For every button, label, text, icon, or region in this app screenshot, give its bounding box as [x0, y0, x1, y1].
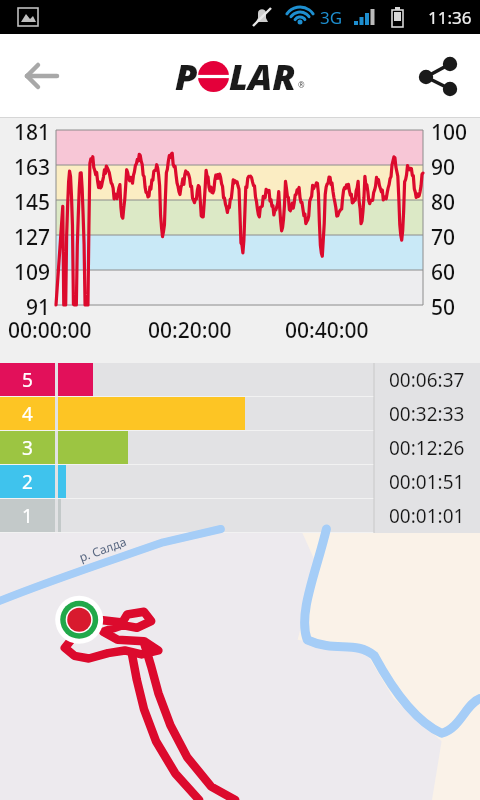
staticText: 3G — [320, 6, 343, 29]
button[interactable]: Back — [10, 44, 74, 108]
staticText: р. Салда — [77, 533, 128, 565]
staticText: P — [175, 52, 198, 101]
staticText: 2 — [0, 469, 55, 495]
staticText: 00:12:26 — [389, 435, 465, 461]
staticText: 70 — [431, 223, 479, 252]
staticText: 145 — [0, 188, 50, 217]
staticText: 00:06:37 — [389, 367, 465, 393]
button[interactable]: Share — [408, 45, 470, 107]
staticText: 60 — [431, 258, 479, 287]
staticText: 163 — [0, 153, 50, 182]
staticText: 00:01:51 — [389, 469, 465, 495]
staticText: 4 — [0, 401, 55, 427]
staticText: 5 — [0, 367, 55, 393]
staticText: 00:20:00 — [148, 316, 232, 345]
staticText: ® — [298, 79, 305, 90]
staticText: 11:36 — [428, 6, 472, 29]
button[interactable]: 5 — [0, 363, 480, 397]
button[interactable]: 1 — [0, 499, 480, 533]
button[interactable]: 2 — [0, 465, 480, 499]
button[interactable]: 4 — [0, 397, 480, 431]
staticText: 3 — [0, 435, 55, 461]
staticText: 50 — [431, 293, 479, 322]
button[interactable]: 3 — [0, 431, 480, 465]
staticText: 181 — [0, 118, 50, 147]
staticText: 1 — [0, 503, 55, 529]
staticText: 91 — [0, 293, 50, 322]
button[interactable]: р. Салда — [0, 533, 480, 800]
staticText: 109 — [0, 258, 50, 287]
staticText: 100 — [431, 118, 479, 147]
staticText: 00:32:33 — [389, 401, 465, 427]
staticText: 90 — [431, 153, 479, 182]
staticText: 00:01:01 — [389, 503, 465, 529]
staticText: LAR — [229, 52, 296, 101]
staticText: 127 — [0, 223, 50, 252]
staticText: 80 — [431, 188, 479, 217]
staticText: 00:40:00 — [285, 316, 369, 345]
staticText: 00:00:00 — [8, 316, 92, 345]
